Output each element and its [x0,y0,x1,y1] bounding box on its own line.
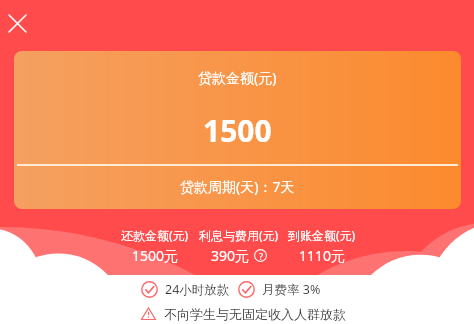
staticText: 390元 [211,246,250,265]
staticText: 1110元 [299,246,346,265]
button[interactable]: Help [254,249,267,262]
button[interactable]: 24小时放款 [141,281,230,298]
staticText: 贷款周期(天)：7天 [180,177,295,196]
staticText: 1500元 [132,246,179,265]
staticText: ? [259,250,263,262]
staticText: 贷款金额(元) [198,68,277,87]
staticText: 利息与费用(元) [199,227,279,243]
staticText: 到账金额(元) [288,227,356,243]
staticText: 不向学生与无固定收入人群放款 [164,306,346,322]
button[interactable]: 月费率 3% [238,281,321,298]
staticText: 还款金额(元) [121,227,189,243]
staticText: 24小时放款 [165,281,230,298]
staticText: 月费率 3% [262,281,321,298]
button[interactable]: Close [1,7,33,39]
button[interactable]: 贷款金额(元) [14,51,461,209]
staticText: 1500 [203,110,272,151]
